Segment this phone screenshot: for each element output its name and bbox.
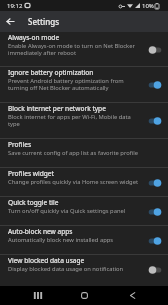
- staticText: Turn on/off quickly via Quick settings p…: [8, 207, 126, 215]
- staticText: Ignore battery optimization: [8, 68, 94, 77]
- button[interactable]: Recent apps: [23, 286, 53, 305]
- button[interactable]: Back: [117, 286, 147, 305]
- staticText: 10%: [142, 2, 154, 10]
- button[interactable]: Profiles: [0, 139, 168, 168]
- staticText: Profiles: [8, 140, 32, 149]
- staticText: Enable Always-on mode to turn on Net Blo…: [8, 42, 143, 57]
- staticText: Save current config of app list as favor…: [8, 149, 138, 157]
- button[interactable]: Profiles widget: [0, 168, 168, 197]
- staticText: View blocked data usage: [8, 256, 85, 265]
- staticText: Settings: [28, 16, 60, 27]
- staticText: Auto-block new apps: [8, 227, 73, 236]
- staticText: Block internet for apps per Wi-Fi, Mobil…: [8, 113, 143, 128]
- staticText: Quick toggle tile: [8, 198, 59, 207]
- staticText: Always-on mode: [8, 33, 60, 42]
- button[interactable]: Auto-block new apps: [0, 226, 168, 255]
- button[interactable]: Ignore battery optimization: [0, 67, 168, 103]
- button[interactable]: Quick toggle tile: [0, 197, 168, 226]
- button[interactable]: Always-on mode: [0, 32, 168, 67]
- button[interactable]: Back: [0, 11, 21, 32]
- staticText: Profiles widget: [8, 169, 54, 178]
- staticText: 19:12: [7, 2, 23, 10]
- staticText: Display blocked data usage on notificati…: [8, 265, 124, 273]
- button[interactable]: View blocked data usage: [0, 255, 168, 284]
- staticText: Block internet per network type: [8, 104, 106, 113]
- staticText: Automatically block new installed apps: [8, 236, 114, 244]
- button[interactable]: Block internet per network type: [0, 103, 168, 139]
- staticText: Change profiles quickly via Home screen …: [8, 178, 139, 186]
- button[interactable]: Home: [69, 286, 99, 305]
- staticText: Prevent Android battery optimization fro…: [8, 77, 143, 92]
